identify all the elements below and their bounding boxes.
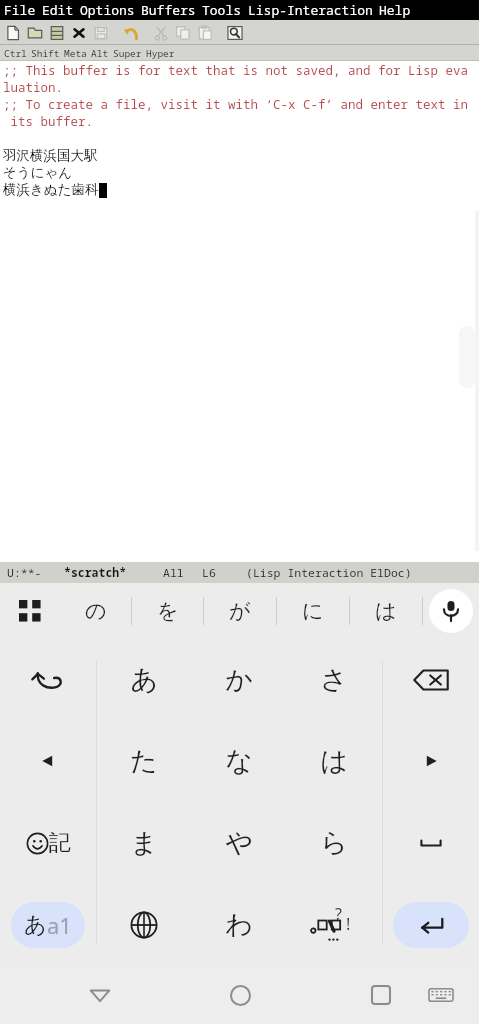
staticText: あ <box>130 663 158 697</box>
button[interactable]: さ <box>286 639 382 720</box>
button[interactable]: や <box>191 802 286 884</box>
staticText: に <box>302 598 324 624</box>
button[interactable]: Alt <box>89 47 111 60</box>
button[interactable]: Keyboard menu <box>0 583 60 639</box>
staticText: の <box>85 598 107 624</box>
staticText: a1 <box>47 910 72 940</box>
staticText: *scratch* <box>64 565 127 581</box>
button[interactable]: Back <box>74 969 126 1021</box>
button[interactable]: あ <box>11 902 85 948</box>
staticText: Hyper <box>146 47 175 60</box>
button[interactable]: は <box>286 720 382 802</box>
staticText: さ <box>320 663 348 697</box>
button[interactable]: Paste <box>194 22 216 44</box>
button[interactable]: Copy <box>172 22 194 44</box>
button[interactable]: Lisp-Interaction <box>245 1 376 19</box>
button[interactable]: Space <box>382 802 479 884</box>
other: Emoji and symbols <box>26 832 49 855</box>
staticText: ら <box>320 826 348 860</box>
staticText: ;; This buffer is for text that is not s… <box>3 62 469 79</box>
button[interactable]: Enter <box>393 902 469 948</box>
button[interactable]: Help <box>376 1 414 19</box>
staticText: を <box>157 598 179 624</box>
staticText: が <box>229 598 251 624</box>
staticText: Lisp-Interaction <box>248 1 373 19</box>
staticText: its buffer. <box>3 113 94 130</box>
staticText: ? <box>335 903 342 925</box>
staticText: ! <box>346 913 351 935</box>
button[interactable]: Meta <box>62 47 89 60</box>
button[interactable]: Cursor right <box>382 720 479 802</box>
button[interactable]: File <box>1 1 39 19</box>
staticText: All <box>163 565 184 581</box>
other: Cursor right <box>418 748 444 774</box>
staticText: Buffers <box>141 1 196 19</box>
button[interactable]: Shift <box>29 47 62 60</box>
staticText: あ <box>24 911 47 939</box>
button[interactable]: New file <box>2 22 24 44</box>
button[interactable]: ま <box>96 802 191 884</box>
button[interactable]: あ <box>96 639 191 720</box>
button[interactable]: Cut <box>150 22 172 44</box>
button[interactable]: を <box>132 583 203 639</box>
button[interactable]: Home <box>214 969 266 1021</box>
button[interactable]: あ <box>0 884 96 966</box>
staticText: 羽沢横浜国大駅 <box>3 147 98 164</box>
button[interactable]: な <box>191 720 286 802</box>
staticText: 横浜きぬた歯科 <box>3 181 99 198</box>
button[interactable]: Save buffer <box>90 22 112 44</box>
staticText: luation. <box>3 79 64 96</box>
button[interactable]: か <box>191 639 286 720</box>
staticText: Edit <box>42 1 74 19</box>
button[interactable]: Voice input <box>423 583 479 639</box>
button[interactable]: Switch language <box>96 884 191 966</box>
other: Cursor left <box>35 748 61 774</box>
button[interactable]: Search <box>224 22 246 44</box>
button[interactable]: Undo <box>0 639 96 720</box>
staticText: そうにゃん <box>3 164 73 181</box>
staticText: Ctrl <box>4 47 27 60</box>
button[interactable]: は <box>350 583 422 639</box>
staticText: Shift <box>31 47 60 60</box>
staticText: わ <box>225 908 253 942</box>
staticText: は <box>320 744 348 778</box>
staticText: か <box>225 663 253 697</box>
staticText: や <box>225 826 253 860</box>
button[interactable]: Backspace <box>382 639 479 720</box>
button[interactable]: た <box>96 720 191 802</box>
staticText: File <box>4 1 36 19</box>
button[interactable]: の <box>60 583 131 639</box>
staticText: (Lisp Interaction ElDoc) <box>246 565 412 581</box>
button[interactable]: Cursor left <box>0 720 96 802</box>
button[interactable]: Enter <box>382 884 479 966</box>
button[interactable]: Close buffer <box>68 22 90 44</box>
button[interactable]: Tools <box>199 1 245 19</box>
staticText: Options <box>80 1 135 19</box>
button[interactable]: わ <box>191 884 286 966</box>
button[interactable]: Punctuation <box>286 884 382 966</box>
button[interactable]: Emoji and symbols <box>0 802 96 884</box>
staticText: 記 <box>49 829 71 857</box>
button[interactable]: が <box>204 583 276 639</box>
button[interactable]: ら <box>286 802 382 884</box>
other: Space <box>415 827 447 859</box>
button[interactable]: Ctrl <box>2 47 29 60</box>
staticText: Meta <box>64 47 87 60</box>
staticText: は <box>375 598 397 624</box>
button[interactable]: Undo <box>120 22 142 44</box>
button[interactable]: に <box>277 583 349 639</box>
button[interactable]: Recent apps <box>355 969 407 1021</box>
button[interactable]: Options <box>77 1 138 19</box>
staticText: ま <box>130 826 158 860</box>
staticText: Alt <box>91 47 109 60</box>
button[interactable]: Hyper <box>144 47 177 60</box>
button[interactable]: Switch keyboard <box>415 969 467 1021</box>
button[interactable]: Directory <box>46 22 68 44</box>
staticText: Tools <box>202 1 242 19</box>
staticText: U:**- <box>7 565 42 581</box>
button[interactable]: Super <box>111 47 144 60</box>
button[interactable]: Edit <box>39 1 77 19</box>
button[interactable]: Buffers <box>138 1 199 19</box>
button[interactable]: Open file <box>24 22 46 44</box>
other: Switch language <box>129 910 159 940</box>
